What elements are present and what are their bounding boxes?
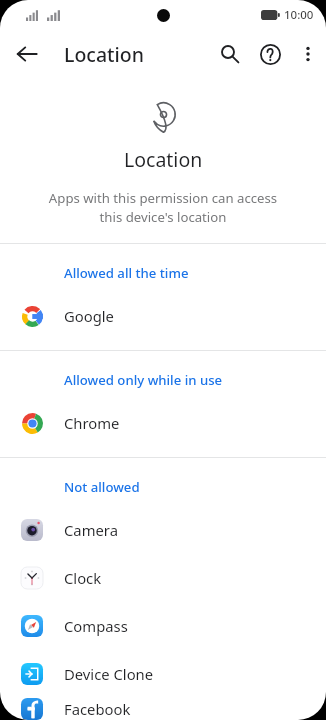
staticText: 10:00 [284, 7, 314, 23]
staticText: Location [124, 146, 203, 173]
staticText: Facebook [64, 699, 131, 719]
button[interactable]: Compass [0, 602, 326, 650]
staticText: Location [64, 41, 144, 68]
staticText: Device Clone [64, 664, 154, 684]
button[interactable]: Chrome [0, 399, 326, 447]
button[interactable]: Clock [0, 554, 326, 602]
staticText: Not allowed [64, 478, 140, 496]
staticText: Allowed all the time [64, 264, 189, 282]
button[interactable]: Facebook [0, 698, 326, 720]
staticText: Apps with this permission can access thi… [38, 189, 288, 226]
button[interactable]: Google [0, 292, 326, 340]
staticText: Chrome [64, 413, 120, 433]
staticText: Google [64, 306, 114, 326]
staticText: Camera [64, 520, 118, 540]
button[interactable]: Search [210, 34, 250, 74]
button[interactable]: Device Clone [0, 650, 326, 698]
button[interactable]: Camera [0, 506, 326, 554]
staticText: Allowed only while in use [64, 371, 223, 389]
button[interactable]: Back [6, 33, 48, 75]
button[interactable]: More options [290, 36, 326, 72]
staticText: Clock [64, 568, 102, 588]
staticText: Compass [64, 616, 128, 636]
button[interactable]: Help [250, 34, 290, 74]
